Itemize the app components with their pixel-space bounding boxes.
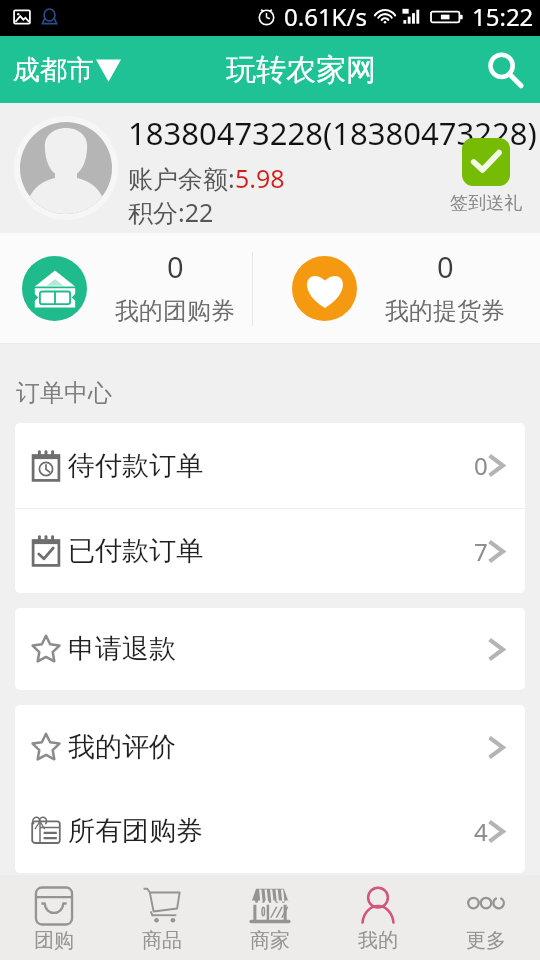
staticText: 我的 [358, 928, 398, 953]
staticText: 账户余额: [128, 161, 235, 195]
staticText: 0 [167, 247, 184, 286]
staticText: 0 [474, 449, 488, 482]
staticText: 待付款订单 [68, 449, 203, 483]
button[interactable]: 商品 [108, 875, 216, 960]
staticText: 商家 [250, 928, 290, 953]
staticText: 所有团购券 [68, 814, 203, 848]
staticText: 已付款订单 [68, 534, 203, 568]
staticText: 4 [474, 815, 488, 848]
staticText: 商品 [142, 928, 182, 953]
button[interactable]: 商家 [216, 875, 324, 960]
staticText: 0 [437, 247, 454, 286]
button[interactable]: 待付款订单 [15, 423, 525, 508]
staticText: 订单中心 [16, 378, 112, 408]
staticText: 申请退款 [68, 632, 176, 666]
staticText: 7 [474, 535, 488, 568]
button[interactable]: 所有团购券 [15, 789, 525, 873]
staticText: 团购 [34, 928, 74, 953]
button[interactable]: 0 [0, 233, 270, 344]
staticText: 成都市 [13, 53, 94, 87]
button[interactable]: 更多 [432, 875, 540, 960]
staticText: 我的评价 [68, 730, 176, 764]
staticText: 5.98 [235, 161, 285, 195]
button[interactable]: 0 [270, 233, 540, 344]
staticText: 积分:22 [128, 195, 214, 229]
button[interactable]: Search [478, 43, 532, 97]
staticText: 签到送礼 [450, 192, 522, 215]
button[interactable]: 申请退款 [15, 608, 525, 690]
staticText: 玩转农家网 [226, 51, 376, 89]
staticText: 我的团购券 [115, 296, 235, 326]
staticText: 更多 [466, 928, 506, 953]
button[interactable]: 团购 [0, 875, 108, 960]
button[interactable]: 我的 [324, 875, 432, 960]
staticText: 15:22 [472, 0, 534, 33]
button[interactable]: 我的评价 [15, 705, 525, 789]
button[interactable]: 成都市 [13, 43, 121, 97]
staticText: 18380473228(18380473228) [128, 112, 537, 154]
staticText: 0.61K/s [284, 0, 367, 33]
staticText: 我的提货券 [385, 296, 505, 326]
button[interactable]: 已付款订单 [15, 509, 525, 593]
button[interactable]: Profile avatar [14, 116, 118, 220]
button[interactable]: 签到送礼 [450, 138, 522, 215]
